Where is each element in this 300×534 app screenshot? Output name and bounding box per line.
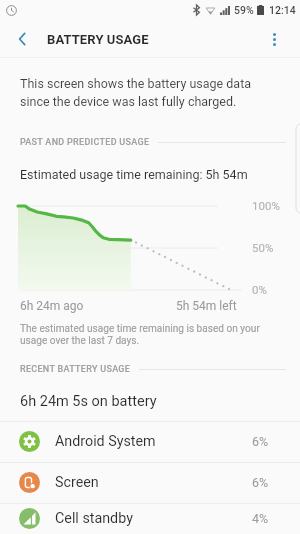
- button[interactable]: Navigate up: [0, 20, 42, 58]
- staticText: 5h 54m left: [176, 299, 237, 313]
- staticText: Android System: [55, 433, 156, 450]
- staticText: PAST AND PREDICTED USAGE: [20, 137, 150, 148]
- staticText: 6h 24m 5s on battery: [20, 393, 157, 410]
- staticText: 0%: [252, 283, 267, 296]
- staticText: 50%: [252, 241, 274, 254]
- staticText: Cell standby: [55, 510, 133, 527]
- staticText: Estimated usage time remaining: 5h 54m: [20, 167, 248, 182]
- staticText: RECENT BATTERY USAGE: [20, 364, 131, 375]
- staticText: 12:14: [269, 4, 296, 16]
- staticText: 6h 24m ago: [20, 299, 84, 313]
- staticText: The estimated usage time remaining is ba…: [20, 323, 278, 347]
- button[interactable]: More options: [248, 20, 300, 58]
- staticText: This screen shows the battery usage data…: [20, 76, 276, 109]
- button[interactable]: Android System: [0, 421, 300, 462]
- staticText: 59%: [234, 4, 254, 16]
- button[interactable]: Cell standby: [0, 503, 300, 534]
- staticText: 100%: [252, 199, 280, 212]
- staticText: 4%: [252, 511, 269, 526]
- staticText: 6%: [252, 434, 269, 449]
- staticText: Screen: [55, 474, 99, 491]
- staticText: 6%: [252, 475, 269, 490]
- button[interactable]: Screen: [0, 462, 300, 503]
- staticText: BATTERY USAGE: [47, 32, 149, 47]
